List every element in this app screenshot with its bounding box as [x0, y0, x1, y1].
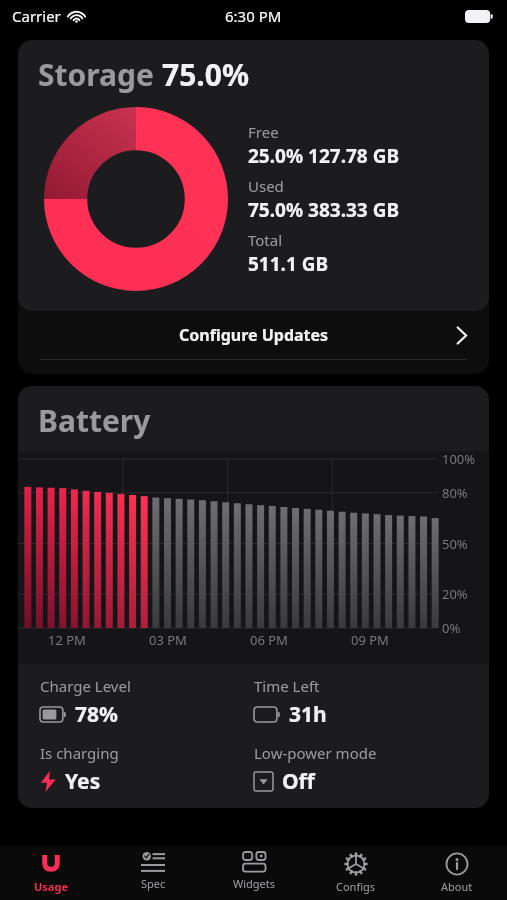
- staticText: 25.0% 127.78 GB: [248, 143, 400, 169]
- staticText: Carrier: [12, 6, 61, 26]
- staticText: Time Left: [254, 676, 320, 696]
- staticText: 06 PM: [250, 631, 288, 649]
- staticText: Widgets: [233, 876, 276, 891]
- other: About: [445, 852, 469, 876]
- staticText: Battery: [38, 400, 151, 441]
- staticText: 6:30 PM: [225, 6, 282, 26]
- button[interactable]: Usage: [0, 846, 102, 900]
- staticText: 20%: [442, 585, 468, 603]
- staticText: 75.0%: [162, 54, 249, 95]
- staticText: Configs: [336, 879, 376, 894]
- other: Configs: [344, 852, 368, 876]
- staticText: 50%: [442, 535, 468, 553]
- staticText: Yes: [65, 767, 101, 796]
- staticText: Off: [282, 767, 315, 796]
- button[interactable]: Widgets: [204, 846, 305, 900]
- other: Spec: [141, 852, 165, 873]
- button[interactable]: Configure Updates: [18, 311, 489, 359]
- staticText: Usage: [34, 879, 68, 894]
- staticText: Free: [248, 122, 279, 142]
- button[interactable]: Configs: [305, 846, 406, 900]
- staticText: Total: [248, 230, 283, 250]
- staticText: 100%: [442, 450, 476, 468]
- staticText: 03 PM: [149, 631, 187, 649]
- staticText: Storage: [38, 54, 162, 95]
- staticText: Charge Level: [40, 676, 131, 696]
- staticText: Is charging: [40, 743, 119, 763]
- staticText: 0%: [442, 619, 461, 637]
- staticText: Configure Updates: [179, 324, 329, 346]
- staticText: 78%: [75, 700, 118, 729]
- other: Widgets: [243, 852, 266, 873]
- staticText: 09 PM: [351, 631, 389, 649]
- button[interactable]: About: [406, 846, 507, 900]
- other: Usage: [39, 852, 63, 876]
- staticText: 12 PM: [48, 631, 86, 649]
- staticText: Used: [248, 176, 284, 196]
- button[interactable]: Spec: [102, 846, 204, 900]
- staticText: About: [441, 879, 473, 894]
- staticText: 75.0% 383.33 GB: [248, 197, 400, 223]
- staticText: 31h: [289, 700, 327, 729]
- staticText: 80%: [442, 484, 468, 502]
- staticText: 511.1 GB: [248, 251, 329, 277]
- staticText: Low-power mode: [254, 743, 377, 763]
- staticText: Spec: [141, 876, 166, 891]
